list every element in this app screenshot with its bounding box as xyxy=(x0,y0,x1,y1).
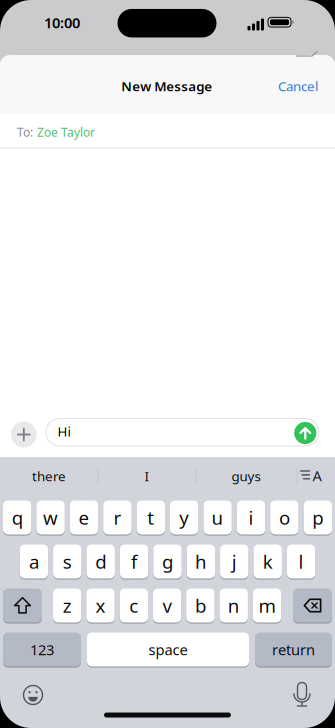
staticText: x xyxy=(95,593,105,618)
button[interactable]: y xyxy=(170,500,198,535)
button[interactable]: h xyxy=(187,544,215,579)
button[interactable]: b xyxy=(186,588,215,623)
button[interactable]: Cancel xyxy=(278,77,318,95)
staticText: i xyxy=(248,505,253,530)
button[interactable]: space xyxy=(87,632,249,667)
button[interactable]: o xyxy=(270,500,299,535)
button[interactable]: Delete xyxy=(293,588,332,623)
button[interactable]: n xyxy=(219,588,248,623)
staticText: s xyxy=(63,549,72,574)
button[interactable]: l xyxy=(287,544,315,579)
staticText: l xyxy=(299,549,304,574)
staticText: a xyxy=(29,549,39,574)
staticText: f xyxy=(131,549,137,574)
staticText: b xyxy=(195,593,206,618)
staticText: return xyxy=(272,640,315,659)
staticText: j xyxy=(232,549,237,574)
button[interactable]: 123 xyxy=(3,632,81,667)
button[interactable]: i xyxy=(237,500,265,535)
button[interactable]: c xyxy=(120,588,148,623)
button[interactable]: z xyxy=(53,588,81,623)
staticText: m xyxy=(258,593,275,618)
staticText: Hi xyxy=(57,423,70,440)
staticText: h xyxy=(195,549,207,574)
staticText: guys xyxy=(231,467,260,485)
staticText: k xyxy=(263,549,273,574)
button[interactable]: e xyxy=(70,500,98,535)
button[interactable]: m xyxy=(253,588,281,623)
staticText: q xyxy=(12,505,23,530)
button[interactable]: Message xyxy=(46,418,319,446)
button[interactable]: a xyxy=(20,544,48,579)
button[interactable]: x xyxy=(86,588,115,623)
staticText: z xyxy=(63,593,72,618)
staticText: A xyxy=(312,466,321,485)
staticText: 10:00 xyxy=(44,13,80,32)
button[interactable]: I xyxy=(144,467,149,485)
button[interactable]: Emoji xyxy=(22,684,44,706)
staticText: d xyxy=(95,549,106,574)
staticText: n xyxy=(228,593,240,618)
button[interactable]: guys xyxy=(231,467,260,485)
button[interactable]: j xyxy=(220,544,248,579)
button[interactable]: w xyxy=(36,500,65,535)
staticText: p xyxy=(312,505,323,530)
staticText: r xyxy=(113,505,121,530)
button[interactable]: Shift xyxy=(3,588,42,623)
button[interactable]: g xyxy=(153,544,182,579)
staticText: 123 xyxy=(30,640,54,659)
button[interactable]: More options xyxy=(11,421,37,447)
staticText: e xyxy=(78,505,89,530)
button[interactable]: there xyxy=(32,467,66,485)
staticText: Zoe Taylor xyxy=(37,124,95,140)
staticText: o xyxy=(279,505,290,530)
staticText: Cancel xyxy=(278,77,318,95)
button[interactable]: d xyxy=(86,544,115,579)
button[interactable]: f xyxy=(120,544,148,579)
button[interactable]: k xyxy=(253,544,282,579)
staticText: u xyxy=(212,505,224,530)
staticText: y xyxy=(179,505,189,530)
button[interactable]: t xyxy=(137,500,165,535)
staticText: New Message xyxy=(121,77,212,95)
staticText: w xyxy=(43,505,58,530)
button[interactable]: u xyxy=(203,500,232,535)
staticText: space xyxy=(148,640,187,659)
staticText: g xyxy=(162,549,173,574)
staticText: t xyxy=(147,505,154,530)
staticText: v xyxy=(163,593,172,618)
button[interactable]: Send xyxy=(294,422,316,444)
button[interactable]: r xyxy=(103,500,132,535)
staticText: there xyxy=(32,467,66,485)
button[interactable]: Dictation xyxy=(289,681,315,709)
button[interactable]: s xyxy=(53,544,81,579)
button[interactable]: v xyxy=(153,588,181,623)
staticText: I xyxy=(144,467,149,485)
button[interactable]: Zoe Taylor xyxy=(37,124,95,140)
button[interactable]: p xyxy=(304,500,332,535)
staticText: To: xyxy=(17,124,33,140)
staticText: c xyxy=(129,593,138,618)
button[interactable]: return xyxy=(255,632,332,667)
button[interactable]: q xyxy=(3,500,31,535)
